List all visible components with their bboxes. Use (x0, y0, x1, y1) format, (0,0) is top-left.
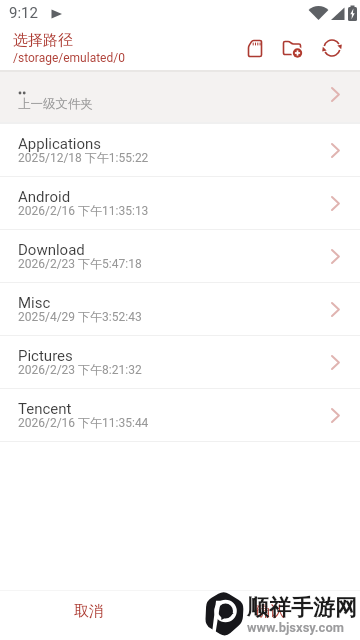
staticText: 顺祥手游网 (247, 594, 357, 622)
staticText: Pictures (18, 347, 73, 365)
button[interactable]: 上一级文件夹 (0, 72, 360, 122)
button[interactable]: Android (0, 177, 360, 230)
button[interactable]: Misc (0, 283, 360, 336)
staticText: 确认 (255, 602, 285, 621)
staticText: Download (18, 241, 85, 259)
staticText: 取消 (74, 602, 104, 621)
button[interactable] (320, 36, 344, 60)
staticText: 2025/12/18 下午1:55:22 (18, 150, 149, 165)
button[interactable] (280, 36, 304, 60)
staticText: Misc (18, 294, 51, 312)
staticText: 2026/2/16 下午11:35:44 (18, 415, 149, 430)
staticText: 2026/2/23 下午8:21:32 (18, 362, 142, 377)
staticText: 选择路径 (13, 31, 73, 50)
button[interactable]: Tencent (0, 389, 360, 442)
button[interactable]: 确认 (220, 596, 320, 634)
staticText: 2025/4/29 下午3:52:43 (18, 309, 142, 324)
button[interactable]: Applications (0, 124, 360, 177)
staticText: 2026/2/16 下午11:35:13 (18, 203, 149, 218)
staticText: /storage/emulated/0 (13, 51, 125, 65)
staticText: www.bjsxsy.com (247, 620, 345, 635)
staticText: 上一级文件夹 (18, 96, 93, 112)
button[interactable]: Download (0, 230, 360, 283)
button[interactable]: Pictures (0, 336, 360, 389)
staticText: Android (18, 188, 71, 206)
staticText: Applications (18, 135, 102, 153)
staticText: Tencent (18, 400, 72, 418)
button[interactable] (243, 36, 267, 60)
staticText: 2026/2/23 下午5:47:18 (18, 256, 142, 271)
button[interactable]: 取消 (40, 596, 140, 634)
staticText: 9:12 (9, 4, 38, 22)
